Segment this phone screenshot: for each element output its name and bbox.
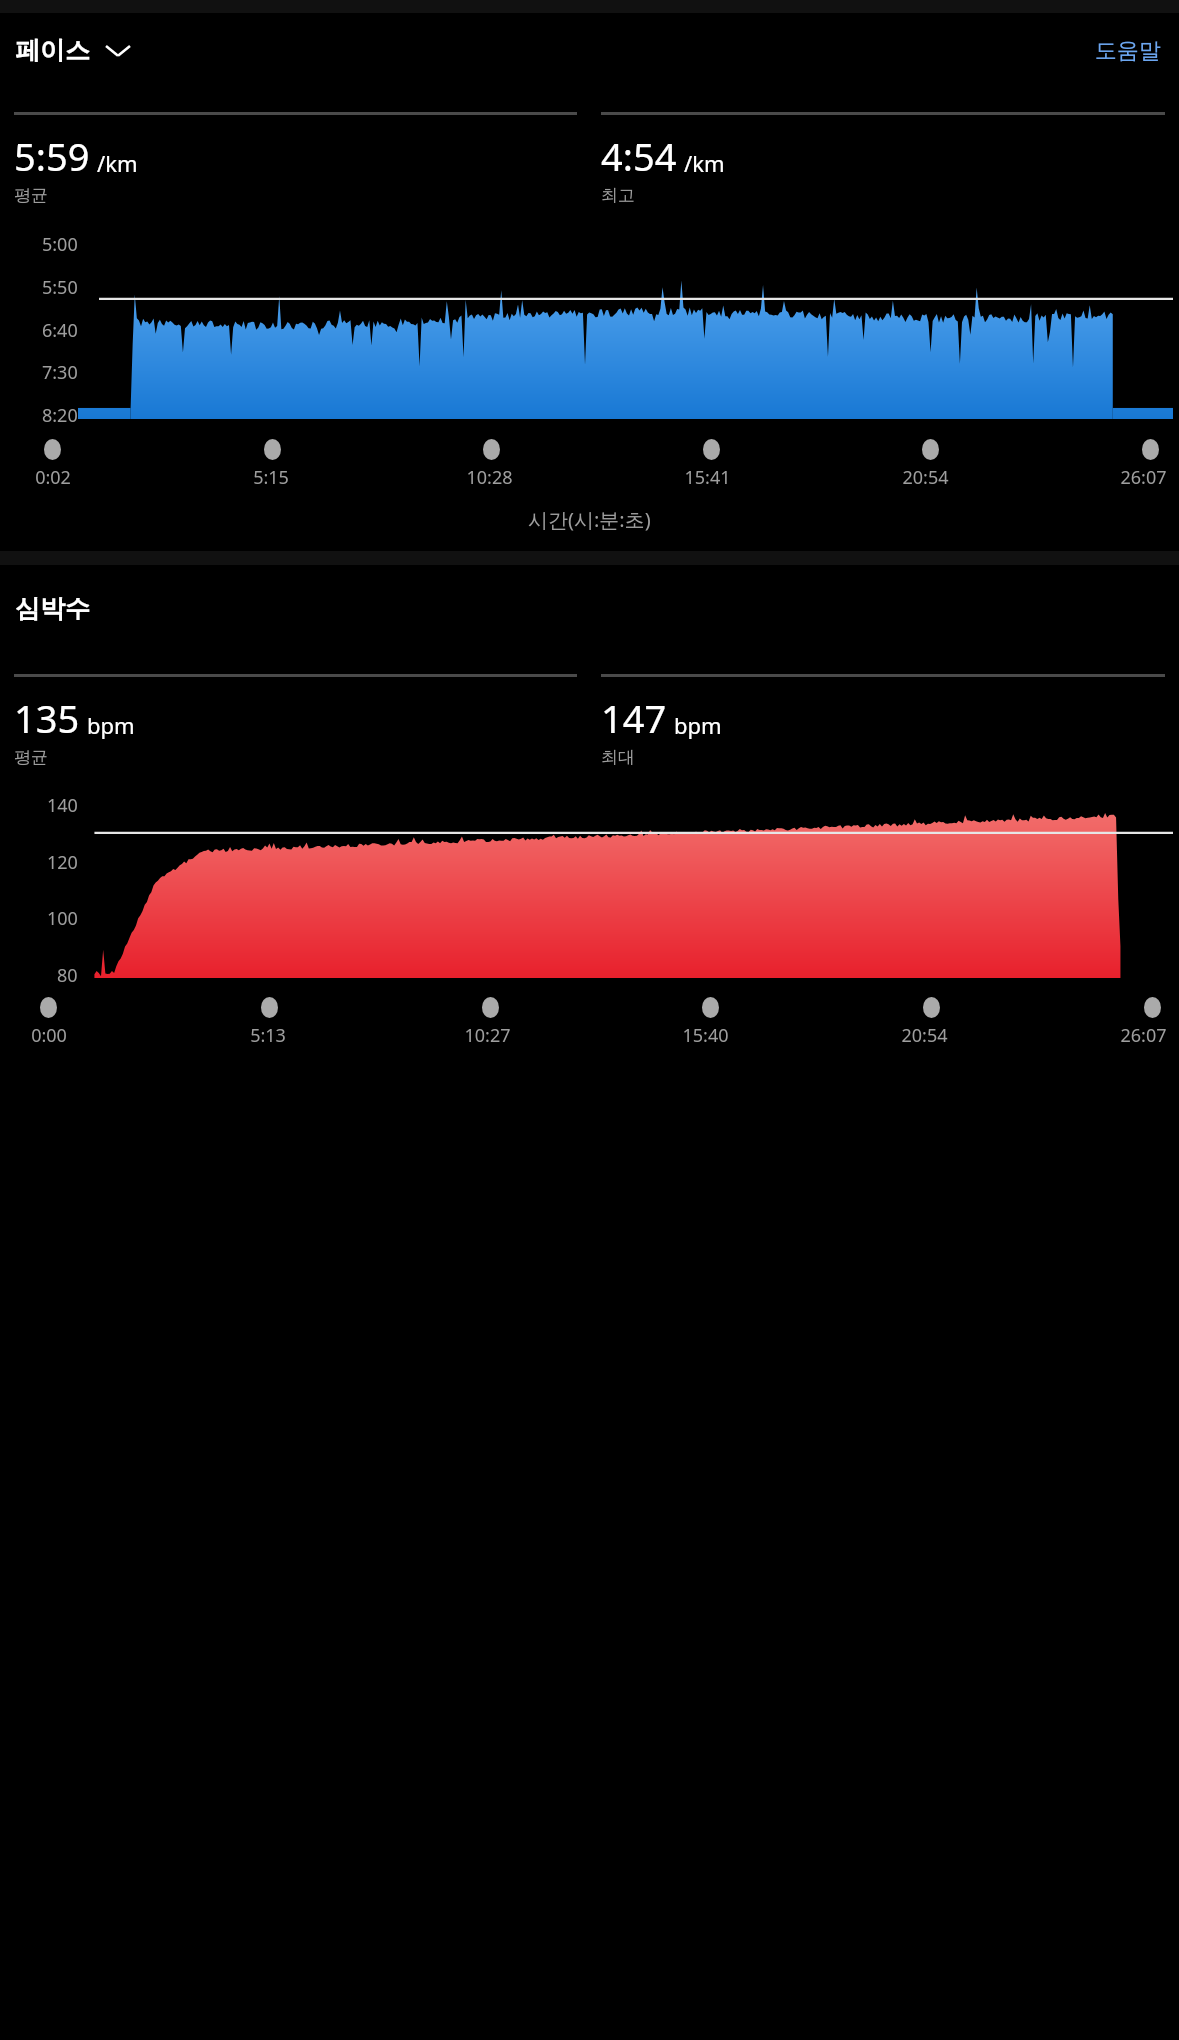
staticText: 5:59 <box>14 130 90 182</box>
staticText: 100 <box>47 906 78 931</box>
staticText: 0:00 <box>31 1023 67 1048</box>
staticText: 5:00 <box>42 232 78 257</box>
staticText: /km <box>97 148 138 178</box>
staticText: 10:28 <box>466 465 513 490</box>
button[interactable]: 135 <box>14 674 577 768</box>
staticText: 도움말 <box>1095 37 1161 65</box>
staticText: 140 <box>47 793 78 818</box>
staticText: 20:54 <box>901 1023 948 1048</box>
staticText: 10:27 <box>464 1023 511 1048</box>
staticText: bpm <box>674 710 722 740</box>
staticText: 시간(시:분:초) <box>528 506 651 533</box>
button[interactable]: 페이스 <box>12 29 134 72</box>
staticText: 5:15 <box>253 465 289 490</box>
staticText: 4:54 <box>601 130 677 182</box>
staticText: 7:30 <box>42 360 78 385</box>
staticText: 20:54 <box>902 465 949 490</box>
staticText: 평균 <box>14 185 48 206</box>
button[interactable]: 147 <box>601 674 1165 768</box>
button[interactable]: 5:59 <box>14 112 577 206</box>
staticText: 147 <box>601 692 667 744</box>
staticText: 135 <box>14 692 80 744</box>
staticText: 26:07 <box>1120 465 1167 490</box>
staticText: 0:02 <box>35 465 71 490</box>
staticText: 5:50 <box>42 275 78 300</box>
staticText: 심박수 <box>15 593 90 624</box>
staticText: 6:40 <box>42 318 78 343</box>
staticText: 5:13 <box>250 1023 286 1048</box>
staticText: 페이스 <box>15 35 90 66</box>
staticText: bpm <box>87 710 135 740</box>
button[interactable]: 도움말 <box>1089 31 1167 71</box>
staticText: 26:07 <box>1120 1023 1167 1048</box>
staticText: 8:20 <box>42 403 78 428</box>
staticText: 120 <box>47 850 78 875</box>
staticText: 15:41 <box>684 465 731 490</box>
staticText: 최고 <box>601 185 635 206</box>
staticText: 15:40 <box>682 1023 729 1048</box>
staticText: 평균 <box>14 747 48 768</box>
staticText: /km <box>684 148 725 178</box>
other: Change metric <box>105 43 131 58</box>
staticText: 최대 <box>601 747 635 768</box>
staticText: 80 <box>57 963 78 988</box>
button[interactable]: 4:54 <box>601 112 1165 206</box>
